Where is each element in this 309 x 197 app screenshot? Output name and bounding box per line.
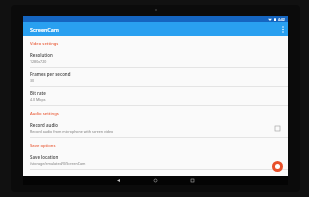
- staticText: Bit rate: [30, 90, 46, 96]
- other: Record audio toggle: [275, 126, 280, 131]
- button[interactable]: Resolution: [23, 49, 288, 67]
- button[interactable]: Start recording: [272, 161, 283, 172]
- button[interactable]: File name format: [23, 170, 288, 176]
- button[interactable]: Back: [114, 176, 123, 185]
- staticText: Resolution: [30, 52, 53, 58]
- staticText: 4.0 Mbps: [30, 97, 46, 102]
- staticText: Save options: [30, 143, 56, 149]
- staticText: ScreenCam: [30, 26, 59, 33]
- staticText: Frames per second: [30, 71, 71, 77]
- button[interactable]: Save location: [23, 151, 288, 169]
- staticText: 1280x720: [30, 59, 47, 64]
- staticText: Record audio: [30, 122, 59, 128]
- button[interactable]: Recent apps: [188, 176, 197, 185]
- staticText: Save location: [30, 154, 59, 160]
- button[interactable]: Record audio: [23, 119, 288, 137]
- button[interactable]: Frames per second: [23, 68, 288, 86]
- staticText: 4:42: [278, 17, 285, 22]
- staticText: 30: [30, 78, 35, 83]
- button[interactable]: Bit rate: [23, 87, 288, 105]
- button[interactable]: Home: [151, 176, 160, 185]
- staticText: Video settings: [30, 41, 59, 47]
- staticText: Audio settings: [30, 111, 59, 117]
- button[interactable]: More options: [278, 22, 288, 36]
- staticText: Record audio from microphone with screen…: [30, 129, 114, 134]
- staticText: /storage/emulated/0/ScreenCam: [30, 161, 86, 166]
